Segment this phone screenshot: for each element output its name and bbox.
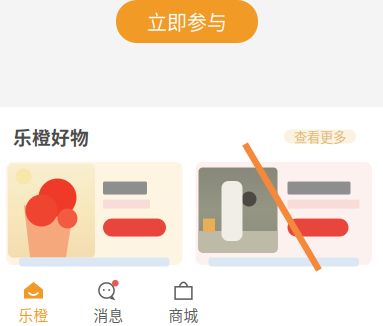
- staticText: 立即参与: [147, 7, 227, 36]
- staticText: 乐橙: [18, 304, 48, 325]
- button[interactable]: 立即参与: [116, 0, 258, 43]
- staticText: 商城: [168, 304, 198, 325]
- staticText: 乐橙好物: [13, 123, 89, 150]
- button[interactable]: [195, 162, 372, 265]
- button[interactable]: 查看更多: [284, 129, 356, 143]
- button[interactable]: 乐橙: [0, 270, 71, 326]
- button[interactable]: [6, 162, 182, 265]
- button[interactable]: 商城: [146, 270, 221, 326]
- staticText: 消息: [93, 304, 123, 325]
- button[interactable]: 消息: [71, 270, 146, 326]
- staticText: 查看更多: [294, 127, 346, 146]
